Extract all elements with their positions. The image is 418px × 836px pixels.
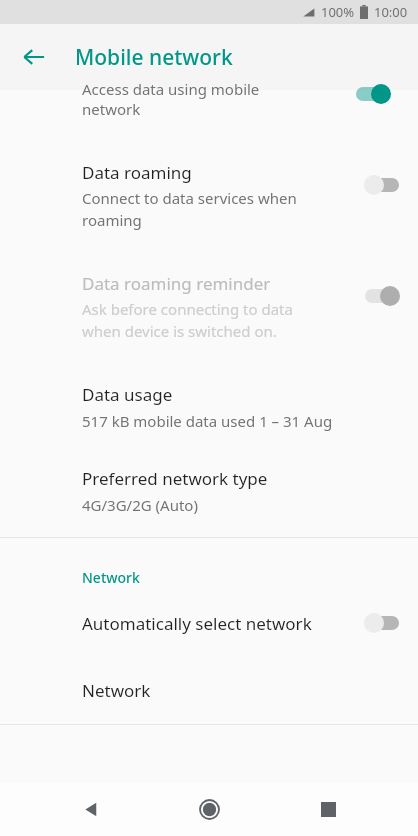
button[interactable]: Toggle on: [364, 284, 400, 308]
staticText: roaming: [82, 210, 142, 230]
staticText: Preferred network type: [82, 467, 268, 490]
staticText: 517 kB mobile data used 1 – 31 Aug: [82, 411, 333, 431]
staticText: Ask before connecting to data: [82, 299, 293, 319]
staticText: Automatically select network: [82, 612, 364, 635]
staticText: 100%: [321, 3, 355, 21]
staticText: when device is switched on.: [82, 321, 277, 341]
button[interactable]: Toggle off: [364, 611, 400, 635]
button[interactable]: Toggle on: [355, 82, 391, 106]
button[interactable]: Toggle off: [364, 173, 400, 197]
button[interactable]: Network: [0, 659, 418, 724]
staticText: Network: [82, 679, 151, 702]
staticText: Mobile network: [75, 43, 233, 72]
staticText: Data roaming reminder: [82, 272, 271, 295]
button[interactable]: Back: [10, 33, 58, 81]
button[interactable]: Back: [63, 783, 119, 836]
staticText: 4G/3G/2G (Auto): [82, 495, 198, 515]
staticText: Data usage: [82, 383, 173, 406]
staticText: Data roaming: [82, 161, 192, 184]
staticText: network: [82, 99, 141, 119]
button[interactable]: Data roaming reminder: [0, 258, 418, 369]
staticText: Network: [82, 568, 140, 587]
staticText: Access data using mobile: [82, 79, 260, 99]
button[interactable]: Data usage: [0, 369, 418, 457]
button[interactable]: Home: [181, 783, 237, 836]
button[interactable]: Automatically select network: [0, 587, 418, 659]
button[interactable]: Data roaming: [0, 125, 418, 258]
button[interactable]: Recents: [300, 783, 356, 836]
button[interactable]: Preferred network type: [0, 457, 418, 537]
staticText: Connect to data services when: [82, 188, 297, 208]
staticText: 10:00: [374, 3, 408, 21]
